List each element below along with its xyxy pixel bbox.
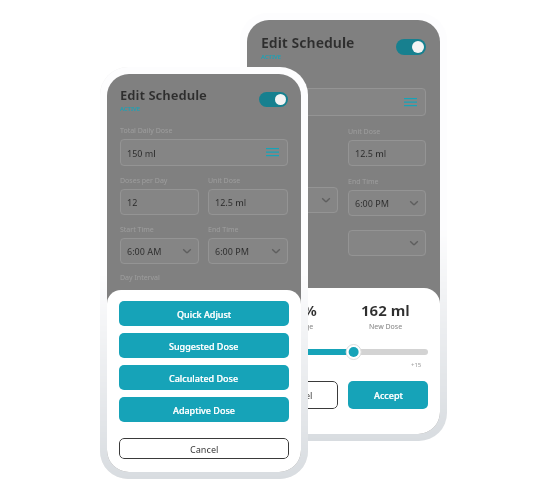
staticText: 6:00 AM: [127, 245, 162, 257]
button[interactable]: Accept: [348, 381, 428, 409]
button[interactable]: Adaptive Dose: [119, 397, 289, 422]
staticText: Cancel: [284, 389, 313, 401]
button[interactable]: Menu: [261, 88, 426, 116]
staticText: Day Interval: [120, 273, 160, 283]
staticText: Unit Dose: [208, 176, 241, 186]
other: Expand: [409, 238, 419, 248]
button[interactable]: Active toggle: [396, 39, 426, 55]
other: Expand: [182, 246, 192, 256]
other: Menu: [266, 148, 279, 157]
staticText: 12.5 ml: [355, 147, 387, 159]
staticText: 6:00 PM: [215, 245, 249, 257]
staticText: ACTIVE: [120, 105, 141, 113]
button[interactable]: Active toggle: [259, 92, 288, 107]
staticText: Calculated Dose: [169, 372, 239, 384]
staticText: Cancel: [190, 443, 219, 455]
button[interactable]: [259, 344, 428, 360]
other: Expand: [321, 195, 331, 205]
button[interactable]: 12.5 ml: [348, 140, 426, 166]
button[interactable]: 6:00 PM: [348, 190, 426, 216]
staticText: 12: [127, 196, 138, 208]
staticText: Doses per Day: [120, 176, 168, 186]
staticText: +8%: [286, 300, 317, 320]
button[interactable]: Calculated Dose: [119, 365, 289, 390]
staticText: 162 ml: [361, 300, 410, 320]
button[interactable]: 6:00 PM: [208, 238, 288, 264]
staticText: Quick Adjust: [177, 308, 232, 320]
staticText: Total Daily Dose: [120, 126, 173, 136]
staticText: 0: [288, 361, 292, 369]
staticText: Suggested Dose: [169, 340, 239, 352]
staticText: End Time: [208, 225, 239, 235]
staticText: 150 ml: [127, 147, 156, 159]
button[interactable]: Expand: [348, 230, 426, 256]
staticText: New Dose: [369, 322, 403, 332]
button[interactable]: 12: [120, 189, 199, 215]
button[interactable]: Cancel: [119, 438, 289, 459]
staticText: Adaptive Dose: [173, 404, 235, 416]
staticText: Start Time: [120, 225, 154, 235]
button[interactable]: Quick Adjust: [119, 301, 289, 326]
staticText: Edit Schedule: [120, 86, 207, 104]
other: Expand: [409, 198, 419, 208]
staticText: ACTIVE: [261, 53, 282, 61]
other: Menu: [404, 98, 417, 107]
button[interactable]: Cancel: [259, 381, 338, 409]
other: Expand: [271, 246, 281, 256]
staticText: Accept: [374, 389, 403, 401]
staticText: End Time: [348, 177, 379, 187]
button[interactable]: Expand: [261, 187, 338, 213]
button[interactable]: 6:00 AM: [120, 238, 199, 264]
staticText: +15: [411, 361, 422, 369]
staticText: Change: [288, 322, 314, 332]
staticText: 12.5 ml: [215, 196, 247, 208]
button[interactable]: 12.5 ml: [208, 189, 288, 215]
staticText: Edit Schedule: [261, 33, 355, 52]
button[interactable]: Suggested Dose: [119, 333, 289, 358]
button[interactable]: 150 ml: [120, 139, 288, 166]
staticText: 6:00 PM: [355, 197, 389, 209]
staticText: Unit Dose: [348, 127, 381, 137]
